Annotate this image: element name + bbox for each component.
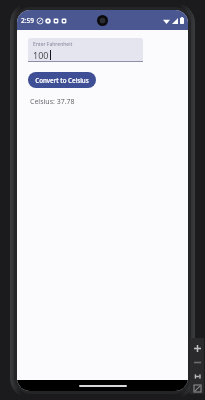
- button[interactable]: Zoom out: [190, 355, 204, 369]
- button[interactable]: Convert to Celsius: [28, 72, 96, 88]
- staticText: 100: [33, 49, 49, 61]
- staticText: Enter Fahrenheit: [33, 41, 73, 48]
- button[interactable]: Enter Fahrenheit: [28, 38, 143, 62]
- staticText: Convert to Celsius: [35, 76, 89, 84]
- other: Home gesture: [79, 385, 127, 387]
- staticText: Celsius: 37.78: [30, 97, 75, 107]
- staticText: 2:59: [21, 16, 34, 25]
- button[interactable]: Zoom in: [190, 341, 204, 355]
- button[interactable]: Rotate: [190, 369, 204, 383]
- button[interactable]: Fullscreen: [190, 383, 204, 394]
